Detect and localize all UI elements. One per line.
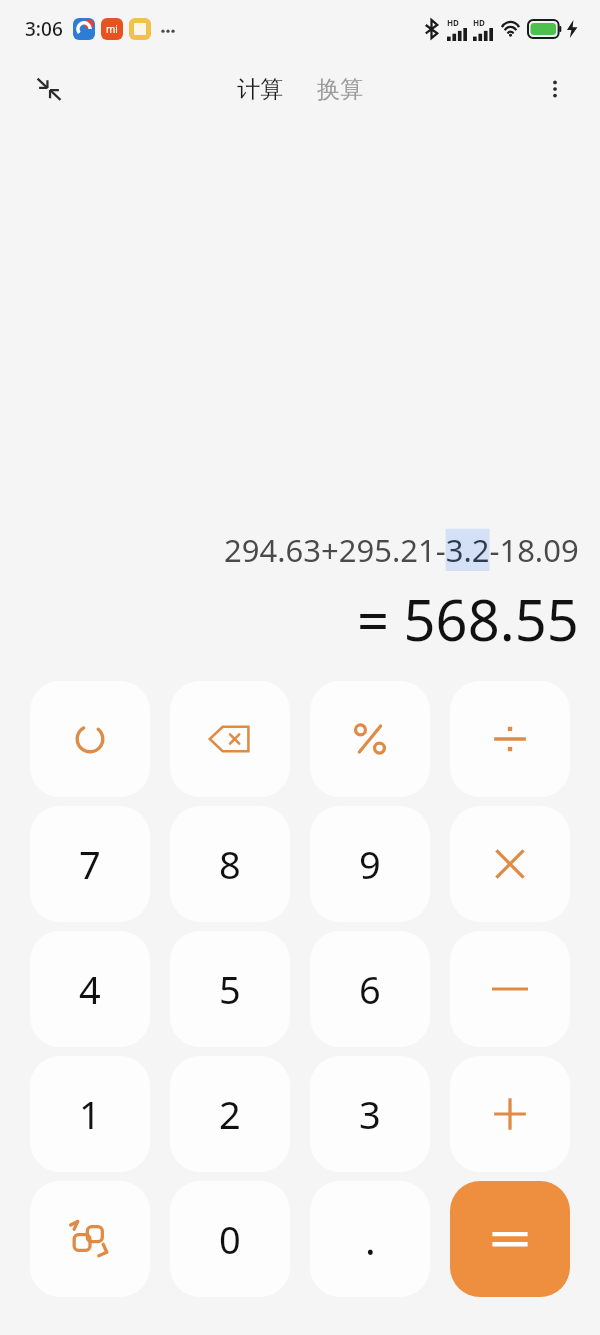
staticText: 5 <box>219 963 241 1015</box>
button[interactable]: 换算 <box>311 71 369 108</box>
button[interactable]: 5 <box>170 931 290 1047</box>
button[interactable]: Multiply <box>450 806 570 922</box>
staticText: 1 <box>79 1088 101 1140</box>
button[interactable]: Plus <box>450 1056 570 1172</box>
button[interactable]: 6 <box>310 931 430 1047</box>
button[interactable]: . <box>310 1181 430 1297</box>
staticText: = 568.55 <box>357 581 579 657</box>
button[interactable]: 1 <box>30 1056 150 1172</box>
button[interactable]: 4 <box>30 931 150 1047</box>
staticText: 6 <box>359 963 381 1015</box>
staticText: 计算 <box>237 75 283 104</box>
staticText: mi <box>106 22 118 36</box>
button[interactable]: 9 <box>310 806 430 922</box>
staticText: 3:06 <box>25 16 63 42</box>
button[interactable]: Collapse <box>25 65 73 113</box>
staticText: 4 <box>79 963 101 1015</box>
button[interactable]: 8 <box>170 806 290 922</box>
button[interactable]: 0 <box>170 1181 290 1297</box>
button[interactable]: Backspace <box>170 681 290 797</box>
button[interactable]: Minus <box>450 931 570 1047</box>
staticText: 0 <box>219 1213 241 1265</box>
button[interactable]: Clear <box>30 681 150 797</box>
staticText: HD <box>473 17 485 28</box>
button[interactable]: 3 <box>310 1056 430 1172</box>
staticText: 9 <box>359 838 381 890</box>
button[interactable]: Divide <box>450 681 570 797</box>
staticText: . <box>365 1212 376 1266</box>
button[interactable]: 2 <box>170 1056 290 1172</box>
staticText: 8 <box>219 838 241 890</box>
staticText: HD <box>447 17 459 28</box>
staticText: 2 <box>219 1088 241 1140</box>
staticText: 7 <box>79 838 101 890</box>
staticText: 294.63+295.21-3.2-18.09 <box>224 529 579 571</box>
button[interactable]: Equals <box>450 1181 570 1297</box>
staticText: 换算 <box>317 75 363 104</box>
button[interactable]: 7 <box>30 806 150 922</box>
button[interactable]: Percent <box>310 681 430 797</box>
button[interactable]: 计算 <box>231 71 289 108</box>
staticText: 3 <box>359 1088 381 1140</box>
button[interactable]: Scientific <box>30 1181 150 1297</box>
button[interactable]: More options <box>532 66 578 112</box>
